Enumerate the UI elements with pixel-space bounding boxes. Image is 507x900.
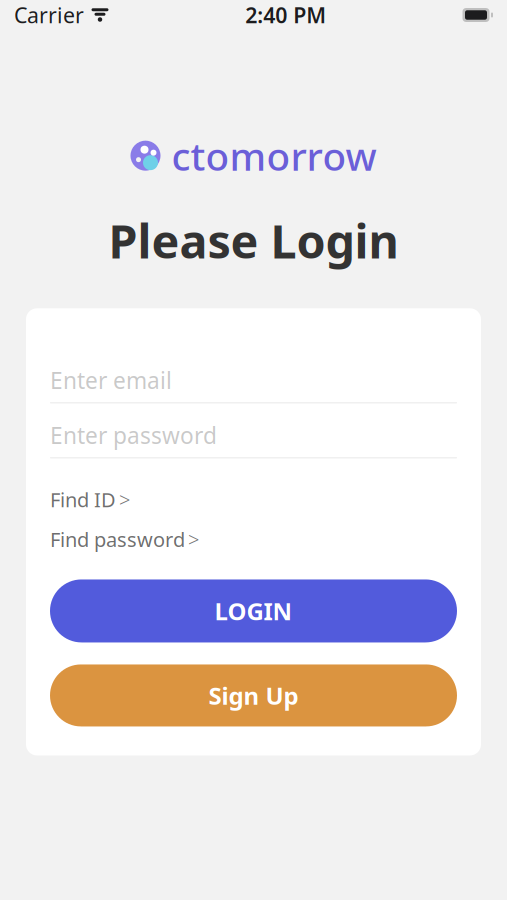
button[interactable]: Find password	[50, 526, 199, 552]
staticText: Sign Up	[208, 679, 298, 711]
button[interactable]: Enter password	[50, 413, 457, 458]
staticText: LOGIN	[214, 595, 292, 627]
staticText: Find ID	[50, 486, 116, 513]
button[interactable]: Find ID	[50, 486, 130, 513]
staticText: 2:40 PM	[245, 1, 326, 29]
button[interactable]: LOGIN	[50, 579, 457, 642]
button[interactable]: Enter email	[50, 358, 457, 403]
staticText: Enter password	[50, 420, 217, 450]
staticText: >	[119, 486, 130, 513]
button[interactable]: Sign Up	[50, 664, 457, 726]
staticText: ctomorrow	[171, 130, 376, 181]
staticText: >	[188, 526, 199, 552]
staticText: Find password	[50, 526, 185, 552]
staticText: Enter email	[50, 365, 172, 395]
staticText: Carrier	[14, 1, 84, 29]
staticText: Please Login	[108, 209, 398, 271]
